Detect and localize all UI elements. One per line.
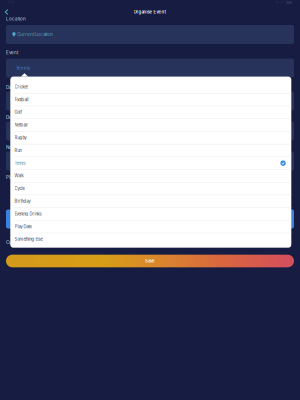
button[interactable]: Current Location [6, 25, 294, 44]
staticText: Rugby [15, 135, 27, 140]
staticText: Cycle [15, 186, 25, 191]
staticText: Notes [6, 144, 18, 150]
staticText: Date [6, 84, 16, 90]
button[interactable]: Back [0, 6, 15, 18]
staticText: Netball [15, 122, 28, 127]
button[interactable]: Tennis [6, 59, 294, 78]
staticText: Cricket [15, 84, 28, 89]
staticText: Birthday [15, 199, 31, 204]
staticText: Organise Event [133, 9, 166, 15]
button[interactable]: Something Else [10, 233, 291, 245]
staticText: Location [6, 16, 26, 22]
staticText: Football [15, 97, 29, 102]
staticText: Golf [15, 110, 23, 115]
staticText: Something Else [15, 237, 43, 242]
staticText: Event [6, 50, 18, 55]
button[interactable]: Cricket [10, 81, 291, 93]
staticText: Current Location [17, 32, 53, 37]
staticText: Tennis [15, 161, 26, 166]
button[interactable]: Football [10, 93, 291, 106]
button[interactable]: Rugby [10, 132, 291, 144]
staticText: Wi-Fi [275, 0, 284, 5]
staticText: Run [15, 148, 22, 153]
button[interactable]: Save [6, 255, 294, 267]
button[interactable]: Cycle [10, 182, 291, 195]
button[interactable]: Walk [10, 170, 291, 182]
button[interactable]: Play Date [10, 220, 291, 233]
staticText: Cost [6, 239, 15, 245]
staticText: Evening Drinks [15, 211, 42, 216]
button[interactable]: Tennis [10, 157, 291, 169]
button[interactable]: Evening Drinks [10, 208, 291, 220]
button[interactable]: Run [10, 144, 291, 157]
button[interactable]: Birthday [10, 195, 291, 207]
staticText: 9:41 [8, 0, 14, 5]
staticText: Walk [15, 173, 24, 178]
staticText: Players [6, 174, 21, 180]
staticText: Play Date [15, 224, 32, 229]
staticText: Save [145, 258, 155, 264]
button[interactable]: Golf [10, 106, 291, 118]
button[interactable]: Netball [10, 119, 291, 131]
staticText: Tennis [16, 65, 30, 71]
staticText: Duration [6, 114, 25, 120]
